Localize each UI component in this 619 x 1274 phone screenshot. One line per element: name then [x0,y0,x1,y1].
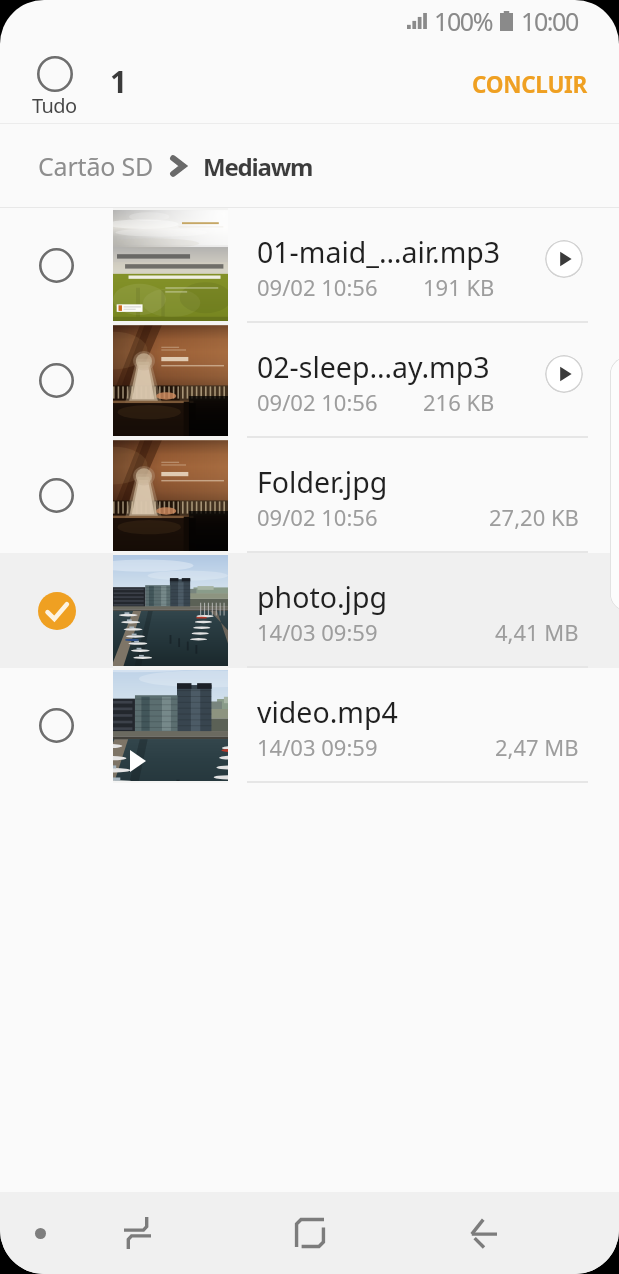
staticText: Folder.jpg [257,463,388,502]
button[interactable]: Cartão SD [29,139,163,193]
staticText: Cartão SD [38,149,154,183]
button[interactable]: Back [444,1192,524,1274]
staticText: 1 [110,61,128,102]
button[interactable]: Mediawm [194,140,322,193]
staticText: 216 KB [423,387,495,417]
staticText: 09/02 10:56 [257,272,378,302]
staticText: 2,47 MB [495,732,579,762]
staticText: Tudo [32,92,77,119]
button[interactable]: Home [270,1192,350,1274]
staticText: 10:00 [521,4,578,38]
staticText: Mediawm [203,150,313,183]
staticText: video.mp4 [257,693,398,732]
staticText: 4,41 MB [495,617,579,647]
staticText: 01-maid_…air.mp3 [257,233,501,272]
staticText: CONCLUIR [472,69,588,100]
staticText: 09/02 10:56 [257,502,378,532]
staticText: 09/02 10:56 [257,387,378,417]
button[interactable]: Play [545,355,583,393]
staticText: photo.jpg [257,578,387,617]
button[interactable]: Recent apps [98,1192,176,1274]
staticText: 100% [434,4,493,38]
button[interactable]: photo.jpg [0,553,619,668]
button[interactable]: Play [545,240,583,278]
staticText: 02-sleep…ay.mp3 [257,348,490,387]
staticText: 14/03 09:59 [257,732,378,762]
staticText: 14/03 09:59 [257,617,378,647]
button[interactable]: Show menu [8,1192,72,1274]
button[interactable]: Folder.jpg [0,438,619,553]
button[interactable]: 02-sleep…ay.mp3 [0,323,619,438]
staticText: 27,20 KB [489,502,579,532]
button[interactable]: 01-maid_…air.mp3 [0,208,619,323]
button[interactable]: video.mp4 [0,668,619,783]
button[interactable]: Tudo [23,54,86,121]
button[interactable]: CONCLUIR [462,61,598,108]
staticText: 191 KB [423,272,495,302]
